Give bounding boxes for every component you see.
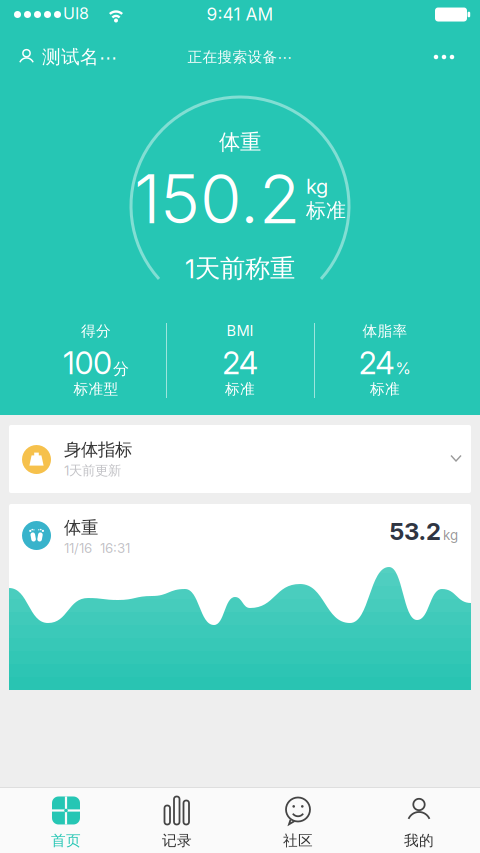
staticText: 身体指标 <box>64 439 132 460</box>
button[interactable]: 用户 <box>18 38 118 76</box>
staticText: 100 <box>63 345 112 381</box>
button[interactable]: 更多 <box>422 38 466 76</box>
button[interactable]: 社区 <box>238 788 358 852</box>
staticText: 体重 <box>64 517 98 538</box>
staticText: kg <box>443 527 458 543</box>
staticText: 记录 <box>162 831 192 849</box>
staticText: 体重 <box>219 129 261 155</box>
button[interactable]: 我的 <box>359 788 479 852</box>
button[interactable]: 首页 <box>6 788 126 852</box>
staticText: 体脂率 <box>362 322 407 340</box>
staticText: 24 <box>222 345 258 381</box>
staticText: kg <box>306 175 328 198</box>
staticText: 标准型 <box>73 380 118 398</box>
staticText: UI8 <box>63 4 89 23</box>
staticText: 9:41 AM <box>206 4 273 24</box>
staticText: 150.2 <box>134 158 300 239</box>
staticText: 标准 <box>306 198 346 223</box>
staticText: 测试名⋯ <box>42 45 118 68</box>
staticText: 分 <box>113 359 129 379</box>
staticText: 我的 <box>404 831 434 849</box>
staticText: 53.2 <box>389 517 441 545</box>
button[interactable]: 体重 <box>9 504 471 690</box>
button[interactable]: 记录 <box>117 788 237 852</box>
staticText: 标准 <box>225 380 255 398</box>
staticText: BMI <box>226 322 253 339</box>
staticText: % <box>395 359 411 378</box>
staticText: 正在搜索设备⋯ <box>187 48 292 66</box>
staticText: 1天前称重 <box>185 253 295 284</box>
staticText: 社区 <box>283 831 313 849</box>
staticText: 11/16 16:31 <box>64 540 130 556</box>
staticText: 首页 <box>51 831 81 849</box>
staticText: 标准 <box>370 380 400 398</box>
button[interactable]: 身体指标 <box>9 425 471 493</box>
staticText: 1天前更新 <box>64 462 121 479</box>
staticText: 24 <box>359 345 394 381</box>
staticText: 得分 <box>81 322 111 340</box>
